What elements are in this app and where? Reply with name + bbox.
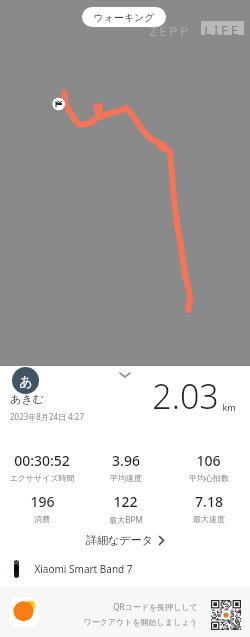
staticText: Xiaomi Smart Band 7 <box>34 562 133 576</box>
staticText: 122 <box>113 492 138 511</box>
staticText: 最大速度 <box>193 514 225 524</box>
staticText: あきむ <box>10 392 44 406</box>
staticText: 196 <box>30 492 55 511</box>
button[interactable]: Xiaomi Smart Band 7 <box>0 557 250 581</box>
staticText: 7.18 <box>195 492 223 511</box>
staticText: 平均心拍数 <box>189 473 229 483</box>
staticText: 3.96 <box>112 451 140 470</box>
staticText: km <box>222 401 236 413</box>
staticText: ZEPP <box>149 22 191 40</box>
staticText: ウォーキング <box>93 11 155 24</box>
button[interactable]: Collapse <box>113 369 137 381</box>
staticText: 2.03 <box>152 373 219 419</box>
button[interactable]: 詳細なデータ <box>0 529 250 551</box>
button[interactable]: Zepp Life app <box>9 597 39 627</box>
staticText: 平均速度 <box>110 473 142 483</box>
staticText: 2023年8月24日 4:27 <box>10 411 84 422</box>
staticText: 00:30:52 <box>14 451 70 470</box>
staticText: エクササイズ時間 <box>9 473 75 483</box>
staticText: 消費 <box>34 514 50 524</box>
button[interactable]: QR code <box>211 600 241 630</box>
staticText: あ <box>19 373 33 389</box>
staticText: 106 <box>196 451 221 470</box>
staticText: LIFE <box>204 21 241 35</box>
staticText: QRコードを長押しして <box>113 601 198 612</box>
staticText: 詳細なデータ <box>86 533 153 547</box>
staticText: 最大BPM <box>109 514 143 525</box>
button[interactable]: ウォーキング <box>82 7 166 27</box>
staticText: ワークアウトを開始しましょう <box>83 617 198 627</box>
